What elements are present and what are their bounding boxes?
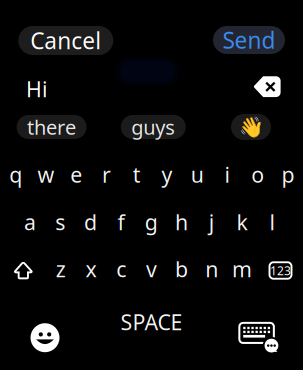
button[interactable]: p <box>273 156 303 192</box>
button[interactable]: d <box>76 204 106 240</box>
button[interactable]: Delete <box>253 75 281 98</box>
button[interactable]: l <box>257 204 287 240</box>
staticText: m <box>232 255 252 283</box>
staticText: i <box>224 160 230 189</box>
button[interactable]: k <box>227 204 257 240</box>
button[interactable]: Waving hand emoji <box>231 114 271 140</box>
button[interactable]: Send <box>213 26 285 54</box>
button[interactable]: there <box>17 115 87 139</box>
staticText: q <box>9 160 22 189</box>
button[interactable]: s <box>45 204 75 240</box>
button[interactable]: o <box>243 156 273 192</box>
button[interactable]: e <box>61 156 91 192</box>
button[interactable]: g <box>136 204 166 240</box>
staticText: e <box>70 160 82 189</box>
button[interactable]: guys <box>121 115 186 139</box>
button[interactable]: w <box>31 156 61 192</box>
staticText: y <box>161 160 172 189</box>
staticText: t <box>133 160 141 189</box>
button[interactable]: i <box>212 156 242 192</box>
button[interactable]: n <box>197 251 227 287</box>
staticText: x <box>85 255 96 283</box>
button[interactable]: Shift <box>7 253 39 287</box>
button[interactable]: y <box>152 156 182 192</box>
staticText: guys <box>131 114 175 140</box>
staticText: g <box>145 208 158 236</box>
staticText: h <box>175 208 188 236</box>
staticText: d <box>84 208 97 236</box>
button[interactable]: a <box>15 204 45 240</box>
button[interactable]: Dictation <box>236 319 282 355</box>
staticText: 👋 <box>238 116 263 138</box>
staticText: SPACE <box>120 308 182 336</box>
button[interactable]: f <box>106 204 136 240</box>
staticText: Send <box>222 25 275 55</box>
button[interactable]: Emoji <box>27 320 63 356</box>
staticText: p <box>281 160 294 189</box>
button[interactable]: r <box>91 156 121 192</box>
button[interactable]: b <box>167 251 197 287</box>
button[interactable]: c <box>106 251 136 287</box>
staticText: f <box>117 208 124 236</box>
staticText: n <box>205 255 218 283</box>
button[interactable]: q <box>1 156 31 192</box>
staticText: w <box>37 160 54 189</box>
staticText: there <box>27 114 76 140</box>
staticText: b <box>175 255 188 283</box>
button[interactable]: v <box>136 251 166 287</box>
button[interactable]: t <box>122 156 152 192</box>
staticText: j <box>209 208 215 236</box>
staticText: 123 <box>270 262 291 278</box>
staticText: u <box>191 160 204 189</box>
staticText: a <box>24 208 36 236</box>
staticText: v <box>146 255 157 283</box>
staticText: Cancel <box>30 25 101 55</box>
button[interactable]: Numbers and symbols <box>265 255 295 285</box>
staticText: z <box>56 255 66 283</box>
button[interactable]: Cancel <box>18 26 113 55</box>
staticText: s <box>55 208 65 236</box>
staticText: c <box>116 255 126 283</box>
button[interactable]: m <box>227 251 257 287</box>
button[interactable]: j <box>197 204 227 240</box>
button[interactable]: x <box>76 251 106 287</box>
staticText: l <box>269 208 275 236</box>
button[interactable]: z <box>46 251 76 287</box>
button[interactable]: u <box>182 156 212 192</box>
staticText: k <box>237 208 248 236</box>
button[interactable]: SPACE <box>106 307 196 337</box>
staticText: o <box>251 160 264 189</box>
staticText: Hi <box>26 75 48 103</box>
staticText: r <box>102 160 111 189</box>
button[interactable]: h <box>166 204 196 240</box>
